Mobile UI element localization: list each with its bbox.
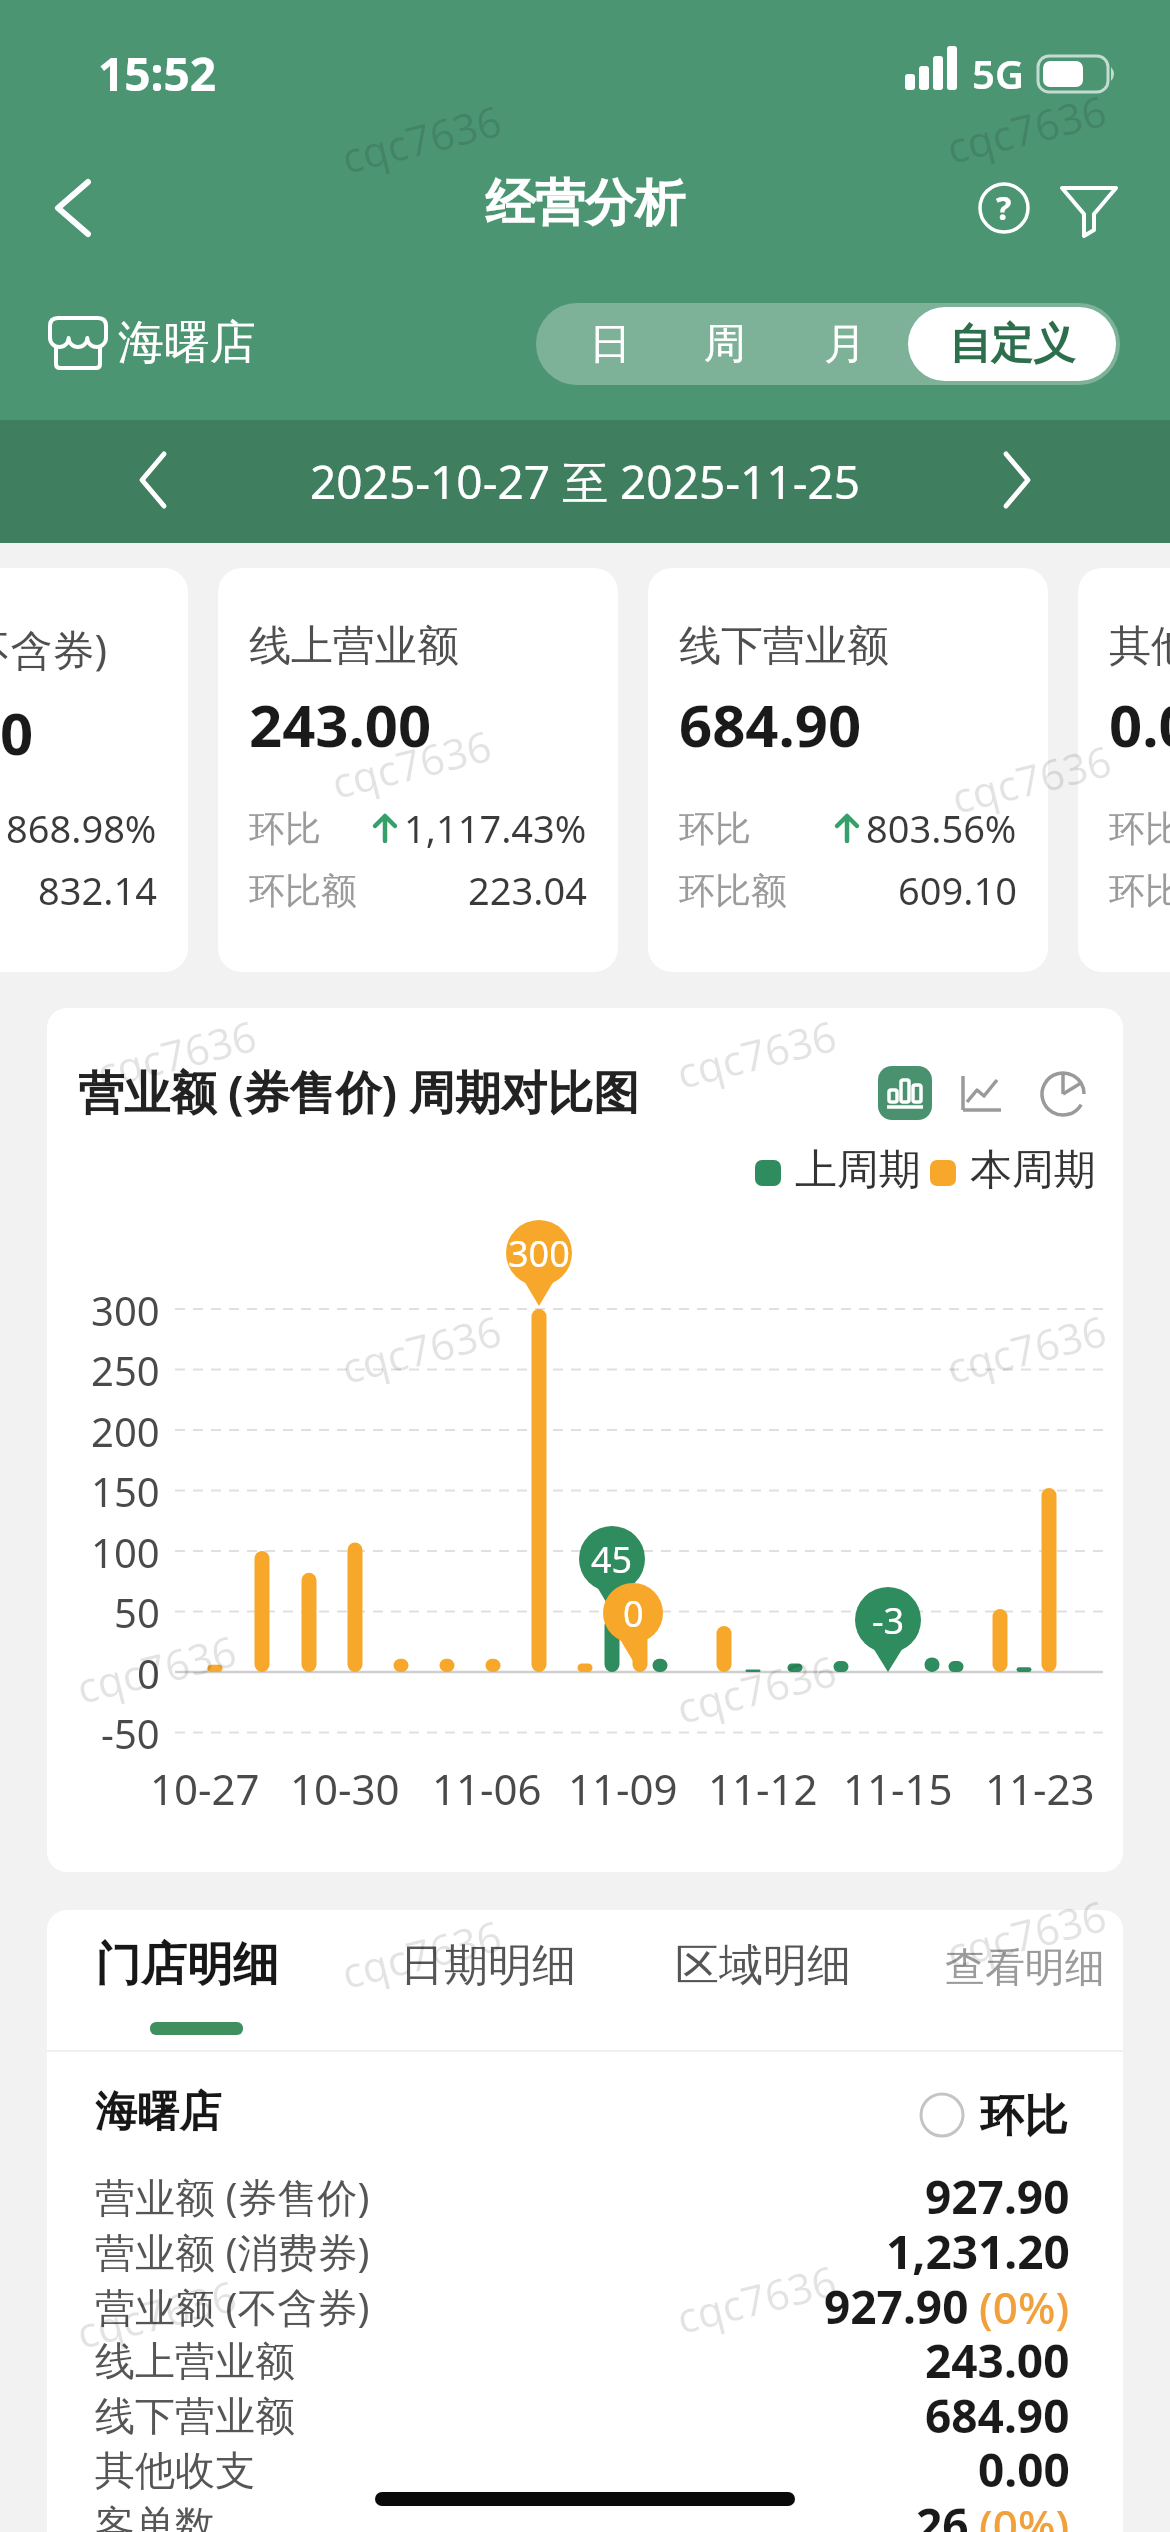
staticText: 环比 bbox=[1109, 806, 1170, 851]
button[interactable]: 营业额 (不含券) bbox=[0, 568, 188, 972]
staticText: 本周期 bbox=[970, 1144, 1096, 1197]
staticText: 0.00 bbox=[1109, 685, 1170, 764]
staticText: 15:52 bbox=[98, 42, 217, 105]
staticText: cqc7636 bbox=[670, 1641, 842, 1736]
staticText: 10-27 bbox=[150, 1760, 260, 1812]
staticText: 100 bbox=[91, 1525, 160, 1577]
staticText: 营业额 (不含券) bbox=[0, 620, 108, 677]
staticText: cqc7636 bbox=[940, 81, 1112, 176]
staticText: cqc7636 bbox=[70, 2266, 242, 2361]
staticText: 50 bbox=[114, 1585, 160, 1637]
button[interactable]: 周 bbox=[683, 303, 767, 385]
staticText: 832.14 bbox=[38, 864, 157, 916]
staticText: 线上营业额 bbox=[95, 2336, 295, 2386]
staticText: 周 bbox=[704, 318, 746, 371]
staticText: 自定义 bbox=[949, 318, 1075, 371]
staticText: 927.90 bbox=[925, 2165, 1070, 2228]
staticText: 11-23 bbox=[985, 1760, 1095, 1812]
button[interactable]: 自定义 bbox=[908, 307, 1116, 381]
staticText: 684.90 bbox=[679, 685, 862, 764]
staticText: 11-15 bbox=[843, 1760, 953, 1812]
button[interactable]: 查看明细 bbox=[945, 1942, 1105, 1992]
staticText: cqc7636 bbox=[335, 1906, 507, 2001]
button[interactable]: 日期明细 bbox=[400, 1938, 576, 1993]
staticText: 0.00 bbox=[978, 2438, 1070, 2501]
staticText: cqc7636 bbox=[90, 1006, 262, 1101]
button[interactable]: 月 bbox=[803, 303, 887, 385]
staticText: 927.90 bbox=[824, 2275, 969, 2338]
staticText: 1,231.20 bbox=[886, 2220, 1070, 2283]
button[interactable]: 线上营业额 bbox=[218, 568, 618, 972]
staticText: cqc7636 bbox=[940, 1301, 1112, 1396]
staticText: (0%) bbox=[979, 2495, 1070, 2532]
staticText: 门店明细 bbox=[95, 1936, 279, 1994]
staticText: 环比 bbox=[249, 806, 321, 851]
staticText: 营业额 (券售价) bbox=[95, 2169, 370, 2224]
staticText: 250 bbox=[91, 1343, 160, 1395]
staticText: 环比额 bbox=[679, 868, 787, 913]
staticText: 223.04 bbox=[468, 864, 587, 916]
staticText: 上周期 bbox=[795, 1144, 921, 1197]
staticText: 11-06 bbox=[432, 1760, 542, 1812]
button[interactable] bbox=[1058, 180, 1120, 240]
staticText: 日 bbox=[589, 318, 631, 371]
staticText: 经营分析 bbox=[485, 172, 685, 235]
staticText: cqc7636 bbox=[325, 716, 497, 811]
staticText: 营业额 (不含券) bbox=[95, 2279, 370, 2334]
staticText: 868.98% bbox=[6, 802, 157, 854]
button[interactable]: ? bbox=[976, 180, 1032, 236]
staticText: 803.56% bbox=[866, 802, 1017, 854]
button[interactable]: 环比 bbox=[919, 2092, 1119, 2142]
button[interactable] bbox=[1037, 1066, 1091, 1120]
staticText: 300 bbox=[91, 1283, 160, 1335]
staticText: 5G bbox=[972, 46, 1024, 100]
button[interactable]: 海曙店 bbox=[48, 312, 308, 376]
button[interactable] bbox=[120, 436, 190, 526]
staticText: 环比额 bbox=[249, 868, 357, 913]
staticText: 其他收支 bbox=[95, 2445, 255, 2495]
staticText: cqc7636 bbox=[945, 731, 1117, 826]
staticText: 300 bbox=[508, 1229, 570, 1278]
button[interactable]: 区域明细 bbox=[675, 1938, 851, 1993]
button[interactable] bbox=[980, 436, 1050, 526]
staticText: 其他收支 bbox=[1109, 620, 1170, 673]
staticText: 684.90 bbox=[925, 2384, 1070, 2447]
staticText: 区域明细 bbox=[675, 1938, 851, 1993]
staticText: 环比额 bbox=[1109, 868, 1170, 913]
staticText: 200 bbox=[91, 1404, 160, 1456]
staticText: cqc7636 bbox=[70, 1621, 242, 1716]
staticText: 查看明细 bbox=[945, 1942, 1105, 1992]
staticText: 243.00 bbox=[249, 685, 432, 764]
staticText: 11-12 bbox=[708, 1760, 818, 1812]
button[interactable]: 日 bbox=[568, 303, 652, 385]
staticText: (0%) bbox=[979, 2277, 1070, 2337]
button[interactable] bbox=[878, 1066, 932, 1120]
staticText: 150 bbox=[91, 1464, 160, 1516]
staticText: cqc7636 bbox=[335, 91, 507, 186]
button[interactable]: 门店明细 bbox=[95, 1936, 279, 1994]
staticText: 0 bbox=[137, 1646, 160, 1698]
staticText: 1,117.43% bbox=[404, 802, 587, 854]
button[interactable]: 其他收支 bbox=[1078, 568, 1170, 972]
staticText: cqc7636 bbox=[670, 1006, 842, 1101]
staticText: -50 bbox=[101, 1706, 160, 1758]
staticText: 26 bbox=[916, 2493, 969, 2532]
staticText: cqc7636 bbox=[335, 1301, 507, 1396]
staticText: 营业额 (消费券) bbox=[95, 2224, 370, 2279]
staticText: 环比 bbox=[980, 2089, 1068, 2139]
staticText: cqc7636 bbox=[940, 1886, 1112, 1981]
staticText: 月 bbox=[824, 318, 866, 371]
staticText: ? bbox=[996, 186, 1012, 230]
staticText: 10-30 bbox=[290, 1760, 400, 1812]
staticText: 海曙店 bbox=[95, 2086, 221, 2139]
staticText: 609.10 bbox=[898, 864, 1017, 916]
button[interactable] bbox=[955, 1066, 1009, 1120]
staticText: 营业额 (券售价) 周期对比图 bbox=[78, 1060, 640, 1123]
staticText: 0 bbox=[0, 693, 34, 772]
staticText: 环比 bbox=[679, 806, 751, 851]
button[interactable]: 线下营业额 bbox=[648, 568, 1048, 972]
staticText: 海曙店 bbox=[118, 314, 256, 372]
staticText: 0 bbox=[623, 1589, 644, 1638]
button[interactable] bbox=[40, 168, 110, 248]
staticText: cqc7636 bbox=[670, 2251, 842, 2346]
